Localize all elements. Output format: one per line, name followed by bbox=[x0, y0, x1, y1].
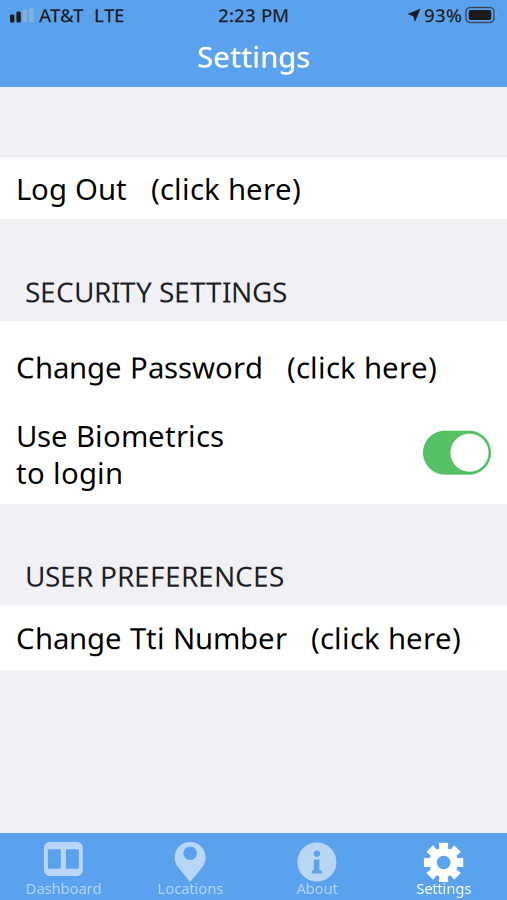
staticText: to login bbox=[16, 453, 123, 492]
staticText: 2:23 PM bbox=[218, 3, 289, 27]
button[interactable]: Dashboard bbox=[0, 833, 127, 900]
button[interactable]: Change Tti Number (click here) bbox=[0, 605, 507, 670]
staticText: 93% bbox=[424, 3, 462, 27]
button[interactable]: Use Biometrics bbox=[0, 413, 507, 504]
staticText: LTE bbox=[94, 3, 124, 27]
staticText: Settings bbox=[416, 878, 471, 898]
staticText: Change Password (click here) bbox=[16, 348, 437, 387]
button[interactable]: Locations bbox=[127, 833, 254, 900]
button[interactable]: About bbox=[253, 833, 380, 900]
staticText: Settings bbox=[197, 37, 310, 76]
staticText: SECURITY SETTINGS bbox=[25, 273, 287, 310]
staticText: About bbox=[296, 878, 337, 898]
button[interactable]: Settings bbox=[380, 833, 507, 900]
staticText: Use Biometrics bbox=[16, 416, 224, 455]
button[interactable]: Log Out (click here) bbox=[0, 158, 507, 219]
button[interactable]: Change Password (click here) bbox=[0, 321, 507, 413]
staticText: Change Tti Number (click here) bbox=[16, 618, 461, 657]
staticText: USER PREFERENCES bbox=[25, 557, 284, 594]
staticText: Log Out (click here) bbox=[16, 169, 301, 208]
staticText: Locations bbox=[157, 878, 223, 898]
staticText: Dashboard bbox=[25, 878, 101, 898]
staticText: AT&T bbox=[39, 3, 83, 27]
